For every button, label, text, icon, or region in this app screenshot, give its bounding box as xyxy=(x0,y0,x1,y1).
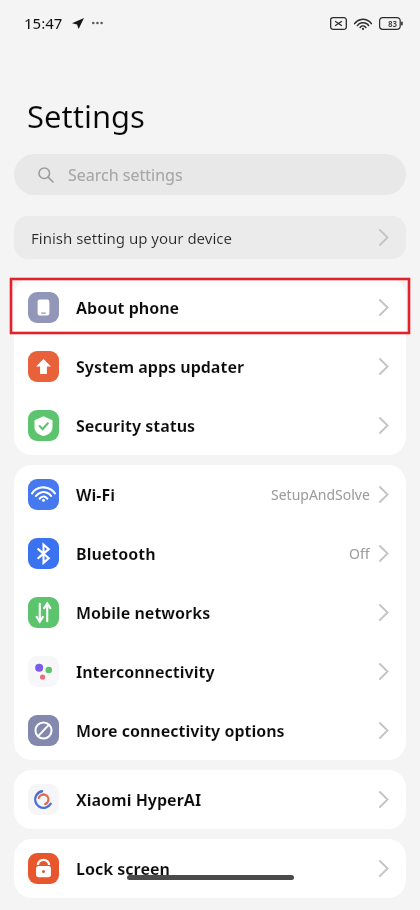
staticText: System apps updater xyxy=(76,356,245,378)
staticText: Xiaomi HyperAI xyxy=(76,789,202,811)
other: More connectivity options xyxy=(28,715,59,746)
other: Bluetooth xyxy=(28,538,59,569)
button[interactable]: Mobile networks xyxy=(14,583,406,642)
staticText: Finish setting up your device xyxy=(31,228,232,248)
staticText: Bluetooth xyxy=(76,543,156,565)
staticText: Off xyxy=(349,544,370,563)
button[interactable]: Security status xyxy=(14,396,406,455)
staticText: Settings xyxy=(27,95,145,137)
staticText: Interconnectivity xyxy=(76,661,215,683)
button[interactable]: More connectivity options xyxy=(14,701,406,760)
button[interactable]: Xiaomi HyperAI xyxy=(14,770,406,829)
button[interactable]: Bluetooth xyxy=(14,524,406,583)
staticText: More connectivity options xyxy=(76,720,285,742)
other: Security status xyxy=(28,410,59,441)
staticText: Mobile networks xyxy=(76,602,211,624)
staticText: Lock screen xyxy=(76,858,170,880)
button[interactable]: Finish setting up your device xyxy=(14,216,406,259)
staticText: Search settings xyxy=(68,164,183,186)
staticText: 15:47 xyxy=(24,13,63,33)
button[interactable]: Wi-Fi xyxy=(14,465,406,524)
other: Lock screen xyxy=(28,853,59,884)
staticText: Security status xyxy=(76,415,196,437)
staticText: SetupAndSolve xyxy=(271,485,370,504)
button[interactable]: System apps updater xyxy=(14,337,406,396)
other: Mobile networks xyxy=(28,597,59,628)
button[interactable]: About phone xyxy=(14,278,406,337)
other: Xiaomi HyperAI xyxy=(28,784,59,815)
button[interactable]: Search settings xyxy=(14,154,406,195)
button[interactable]: Lock screen xyxy=(14,839,406,898)
other: Wi-Fi xyxy=(28,479,59,510)
other: Interconnectivity xyxy=(28,656,59,687)
staticText: About phone xyxy=(76,297,180,319)
button[interactable]: Interconnectivity xyxy=(14,642,406,701)
other: System apps updater xyxy=(28,351,59,382)
other: About phone xyxy=(28,292,59,323)
staticText: Wi-Fi xyxy=(76,484,115,506)
staticText: 83 xyxy=(388,18,398,29)
